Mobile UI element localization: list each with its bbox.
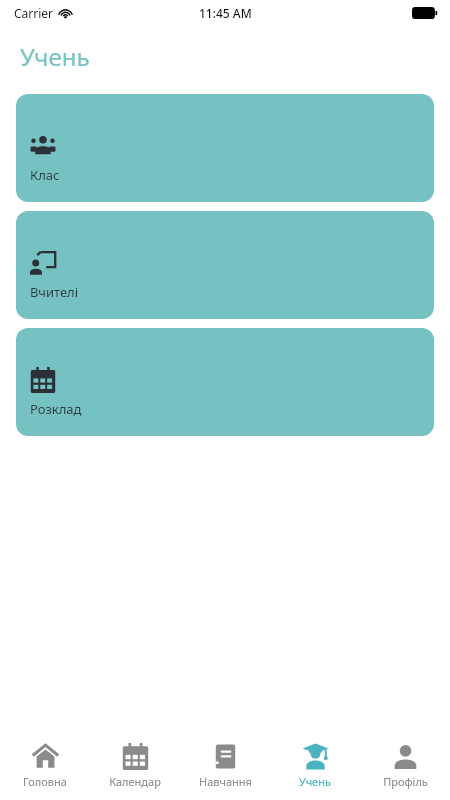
button[interactable]: Профіль <box>360 732 450 800</box>
staticText: Навчання <box>199 774 252 789</box>
button[interactable]: Вчителі <box>16 211 434 319</box>
button[interactable]: Клас <box>16 94 434 202</box>
button[interactable]: Головна <box>0 732 90 800</box>
staticText: 11:45 AM <box>199 5 252 21</box>
staticText: Головна <box>23 774 67 789</box>
staticText: Carrier <box>14 5 54 21</box>
button[interactable]: Навчання <box>180 732 270 800</box>
staticText: Вчителі <box>30 283 79 301</box>
button[interactable]: Календар <box>90 732 180 800</box>
button[interactable]: Учень <box>270 732 360 800</box>
staticText: Профіль <box>383 774 428 789</box>
staticText: Розклад <box>30 400 82 418</box>
staticText: Учень <box>20 40 90 73</box>
staticText: Календар <box>109 774 161 789</box>
staticText: Учень <box>299 774 331 789</box>
button[interactable]: Розклад <box>16 328 434 436</box>
staticText: Клас <box>30 166 60 184</box>
